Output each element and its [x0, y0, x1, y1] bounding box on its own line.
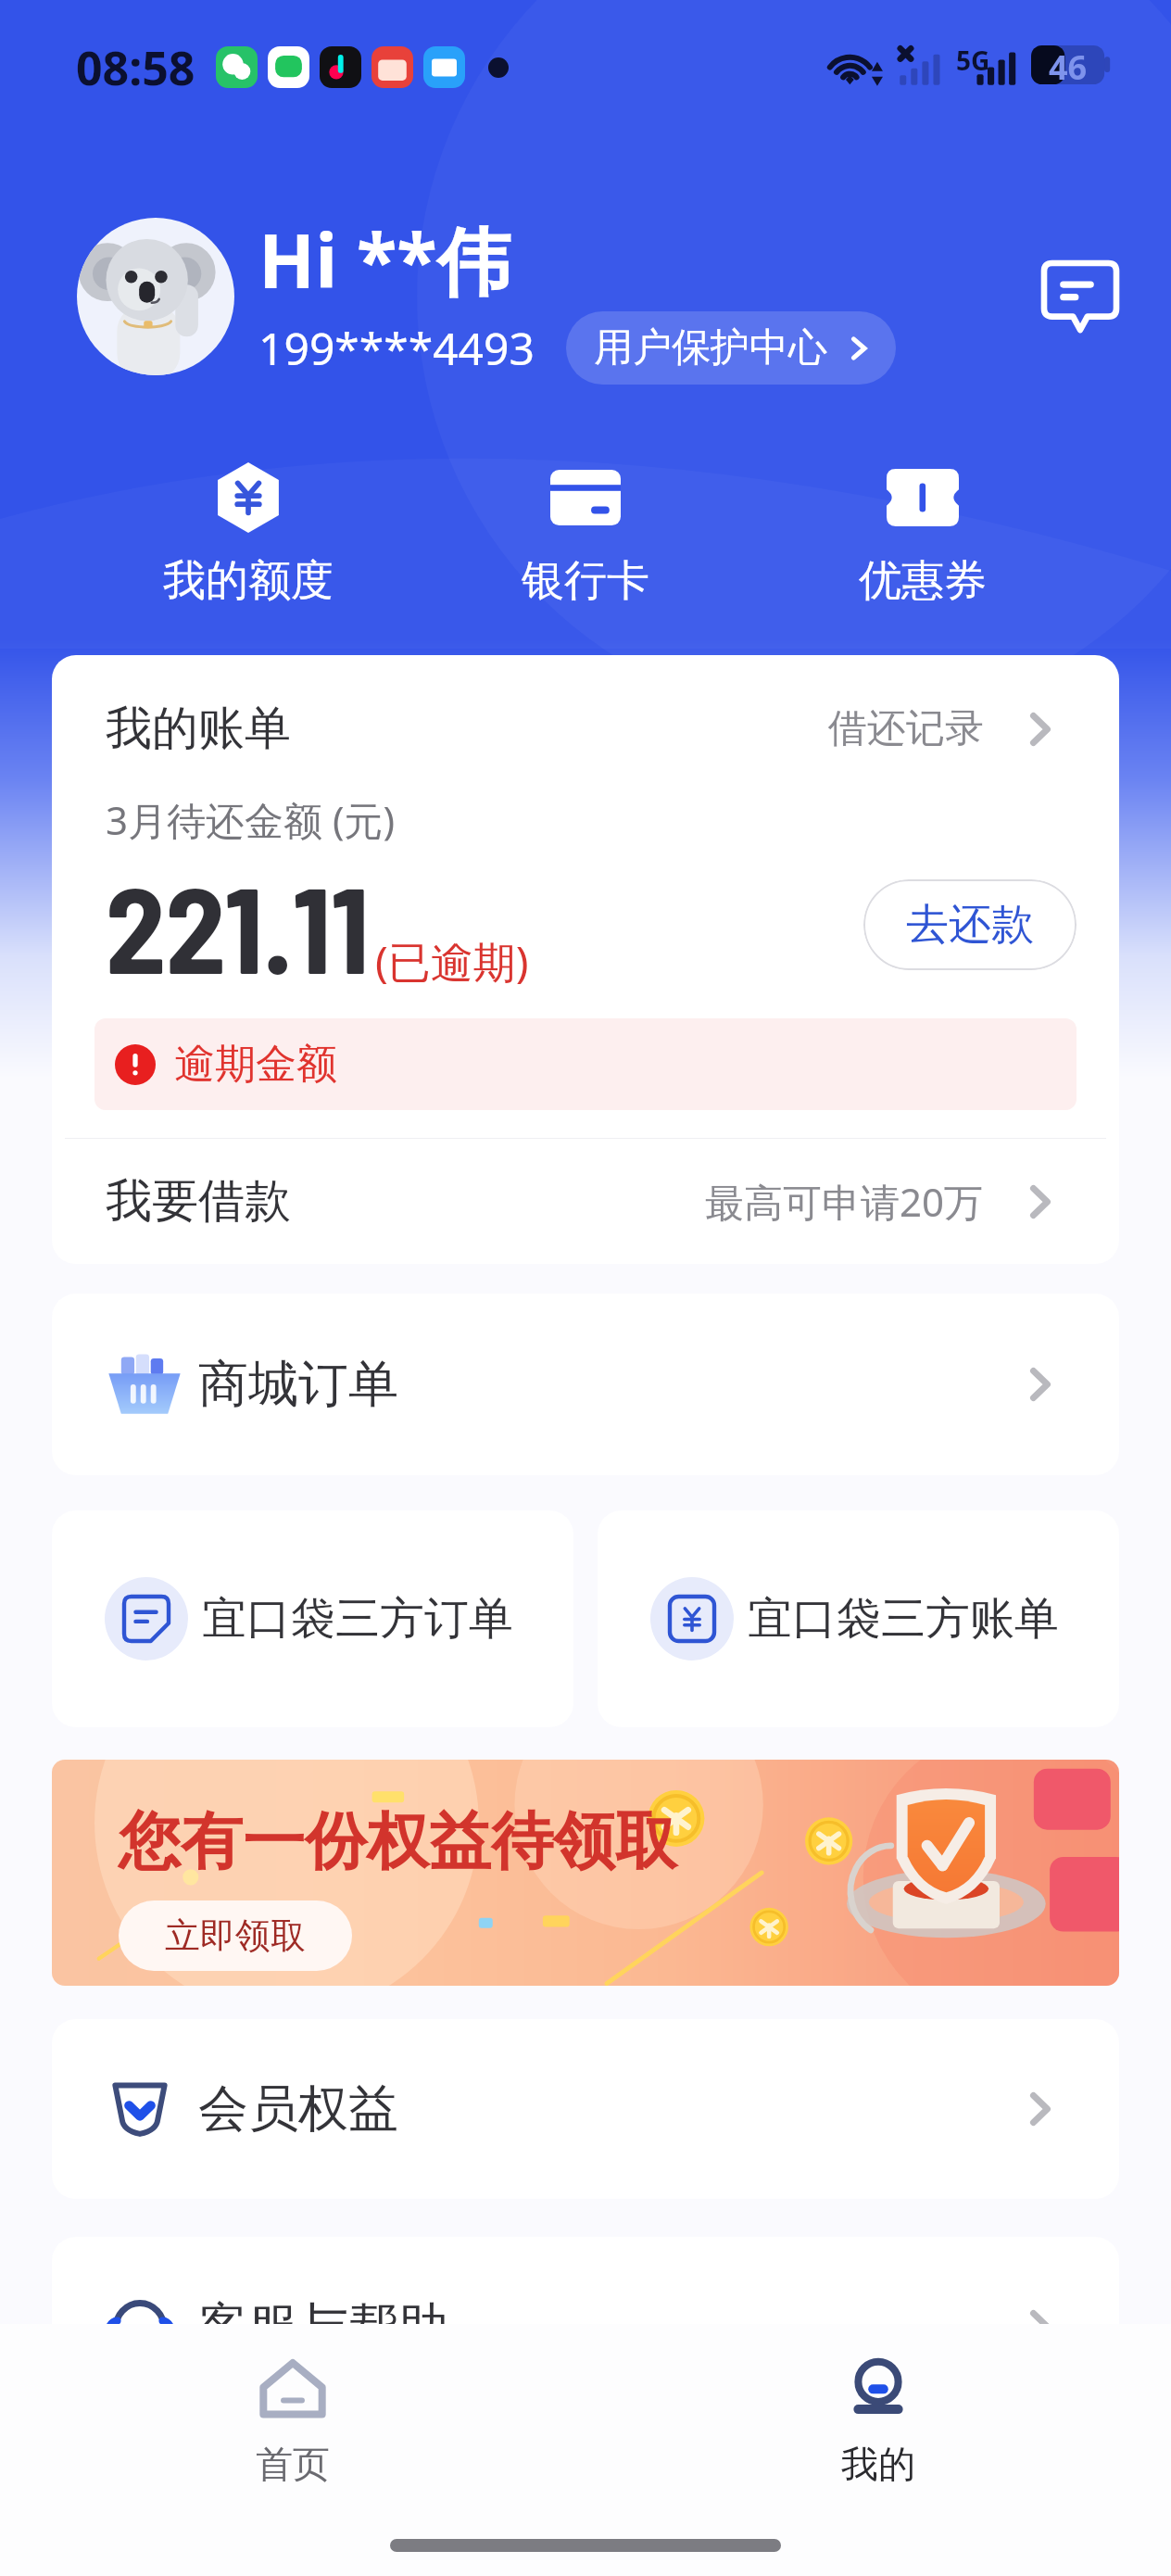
button[interactable]: 我的额度 [80, 461, 417, 608]
staticText: 3月待还金额 (元) [106, 793, 396, 846]
staticText: 我的账单 [106, 700, 291, 758]
staticText: 优惠券 [859, 554, 987, 608]
button[interactable]: 银行卡 [417, 461, 754, 608]
staticText: 会员权益 [198, 2077, 398, 2140]
button[interactable]: 去还款 [863, 879, 1077, 970]
button[interactable]: 客服与帮助 [52, 2237, 1119, 2417]
button[interactable]: 宜口袋三方账单 [598, 1510, 1119, 1727]
button[interactable]: 商城订单 [52, 1294, 1119, 1475]
staticText: 199****4493 [258, 318, 535, 378]
staticText: 借还记录 [828, 704, 984, 753]
staticText: 客服与帮助 [198, 2295, 448, 2358]
button[interactable]: 会员权益 [52, 2019, 1119, 2199]
staticText: 我的 [841, 2441, 915, 2487]
staticText: 46 [1049, 44, 1088, 90]
staticText: 用户保护中心 [594, 323, 827, 373]
staticText: 首页 [256, 2441, 330, 2487]
staticText: 您有一份权益待领取 [119, 1802, 677, 1880]
staticText: 立即领取 [165, 1913, 306, 1958]
staticText: 去还款 [906, 898, 1034, 952]
staticText: 221.11 [106, 853, 370, 998]
button[interactable]: 宜口袋三方订单 [52, 1510, 573, 1727]
button[interactable]: 用户保护中心 [566, 311, 896, 385]
button[interactable]: 我要借款 [52, 1139, 1119, 1264]
staticText: 宜口袋三方账单 [748, 1591, 1059, 1647]
staticText: 银行卡 [522, 554, 649, 608]
button[interactable]: 优惠券 [754, 461, 1091, 608]
staticText: 逾期金额 [174, 1039, 337, 1090]
staticText: (已逾期) [375, 932, 529, 991]
button[interactable]: 您有一份权益待领取 [52, 1760, 1119, 1986]
staticText: 5G [956, 43, 990, 78]
button[interactable]: 立即领取 [119, 1900, 352, 1971]
button[interactable]: 首页 [0, 2324, 585, 2506]
staticText: 宜口袋三方订单 [202, 1591, 513, 1647]
button[interactable]: Messages [1034, 250, 1127, 343]
staticText: 我要借款 [106, 1172, 291, 1231]
staticText: 我的额度 [163, 554, 334, 608]
button[interactable]: 我的账单 [52, 655, 1119, 767]
staticText: 08:58 [76, 36, 195, 99]
staticText: 商城订单 [198, 1353, 398, 1416]
button[interactable]: 我的 [585, 2324, 1171, 2506]
staticText: Hi **伟 [258, 208, 511, 309]
staticText: 最高可申请20万 [705, 1175, 984, 1228]
